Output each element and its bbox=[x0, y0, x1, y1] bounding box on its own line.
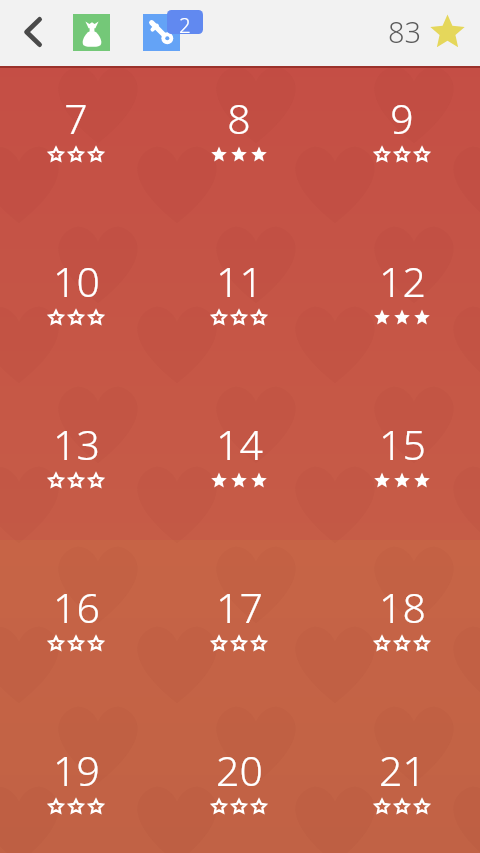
button[interactable]: Coins bbox=[73, 14, 110, 51]
staticText: 20 bbox=[216, 742, 263, 798]
button[interactable]: 14 bbox=[174, 420, 304, 536]
button[interactable]: 15 bbox=[337, 420, 467, 536]
button[interactable]: 19 bbox=[11, 746, 141, 853]
staticText: 15 bbox=[379, 416, 426, 472]
staticText: 19 bbox=[53, 742, 100, 798]
button[interactable]: Stars bbox=[386, 0, 480, 66]
staticText: 8 bbox=[227, 90, 251, 146]
button[interactable]: 20 bbox=[174, 746, 304, 853]
button[interactable]: 10 bbox=[11, 257, 141, 373]
staticText: 9 bbox=[390, 90, 414, 146]
staticText: 2 bbox=[179, 11, 191, 34]
button[interactable]: 18 bbox=[337, 583, 467, 699]
button[interactable]: 12 bbox=[337, 257, 467, 373]
button[interactable]: 7 bbox=[11, 94, 141, 210]
button[interactable]: 13 bbox=[11, 420, 141, 536]
staticText: 21 bbox=[379, 742, 426, 798]
staticText: 18 bbox=[379, 579, 426, 635]
staticText: 13 bbox=[53, 416, 100, 472]
button[interactable]: 8 bbox=[174, 94, 304, 210]
staticText: 14 bbox=[216, 416, 263, 472]
button[interactable]: 17 bbox=[174, 583, 304, 699]
button[interactable]: 21 bbox=[337, 746, 467, 853]
staticText: 11 bbox=[216, 253, 263, 309]
button[interactable]: 9 bbox=[337, 94, 467, 210]
staticText: 17 bbox=[216, 579, 263, 635]
staticText: 83 bbox=[388, 12, 422, 51]
staticText: 7 bbox=[64, 90, 88, 146]
button[interactable]: 16 bbox=[11, 583, 141, 699]
staticText: 10 bbox=[53, 253, 100, 309]
staticText: 12 bbox=[379, 253, 426, 309]
button[interactable]: Key count bbox=[167, 10, 203, 34]
button[interactable]: 11 bbox=[174, 257, 304, 373]
button[interactable]: Back bbox=[0, 0, 66, 66]
button[interactable]: Keys bbox=[143, 14, 180, 51]
staticText: 16 bbox=[53, 579, 100, 635]
